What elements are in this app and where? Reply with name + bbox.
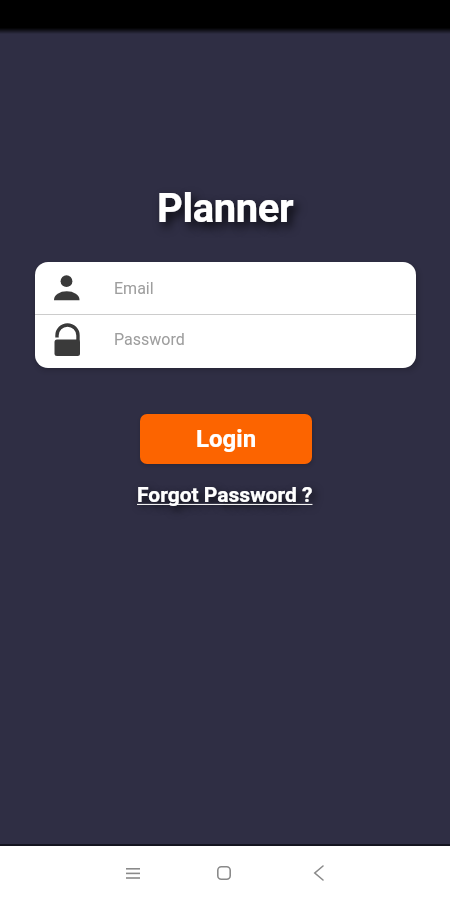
- button[interactable]: Login: [140, 414, 312, 464]
- button[interactable]: [303, 858, 333, 888]
- button[interactable]: Password: [35, 315, 416, 368]
- button[interactable]: Email: [35, 262, 416, 314]
- staticText: Email: [114, 279, 154, 298]
- staticText: Login: [196, 425, 257, 453]
- button[interactable]: [209, 858, 239, 888]
- staticText: Password: [114, 330, 185, 349]
- staticText: Planner: [157, 185, 294, 232]
- button[interactable]: Forgot Password ?: [137, 483, 313, 508]
- button[interactable]: [118, 858, 148, 888]
